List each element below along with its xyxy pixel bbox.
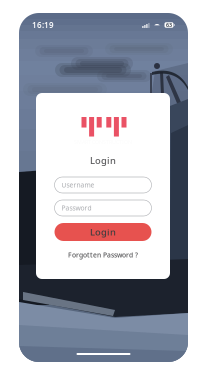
staticText: Login xyxy=(90,154,116,167)
staticText: 63 xyxy=(166,21,172,29)
staticText: Username xyxy=(61,181,94,189)
staticText: Login xyxy=(90,226,116,238)
button[interactable]: Login xyxy=(54,223,151,241)
button[interactable]: Forgotten Password ? xyxy=(54,249,151,261)
staticText: Forgotten Password ? xyxy=(68,251,138,259)
staticText: 16:19 xyxy=(32,20,54,30)
staticText: Password xyxy=(61,204,91,212)
